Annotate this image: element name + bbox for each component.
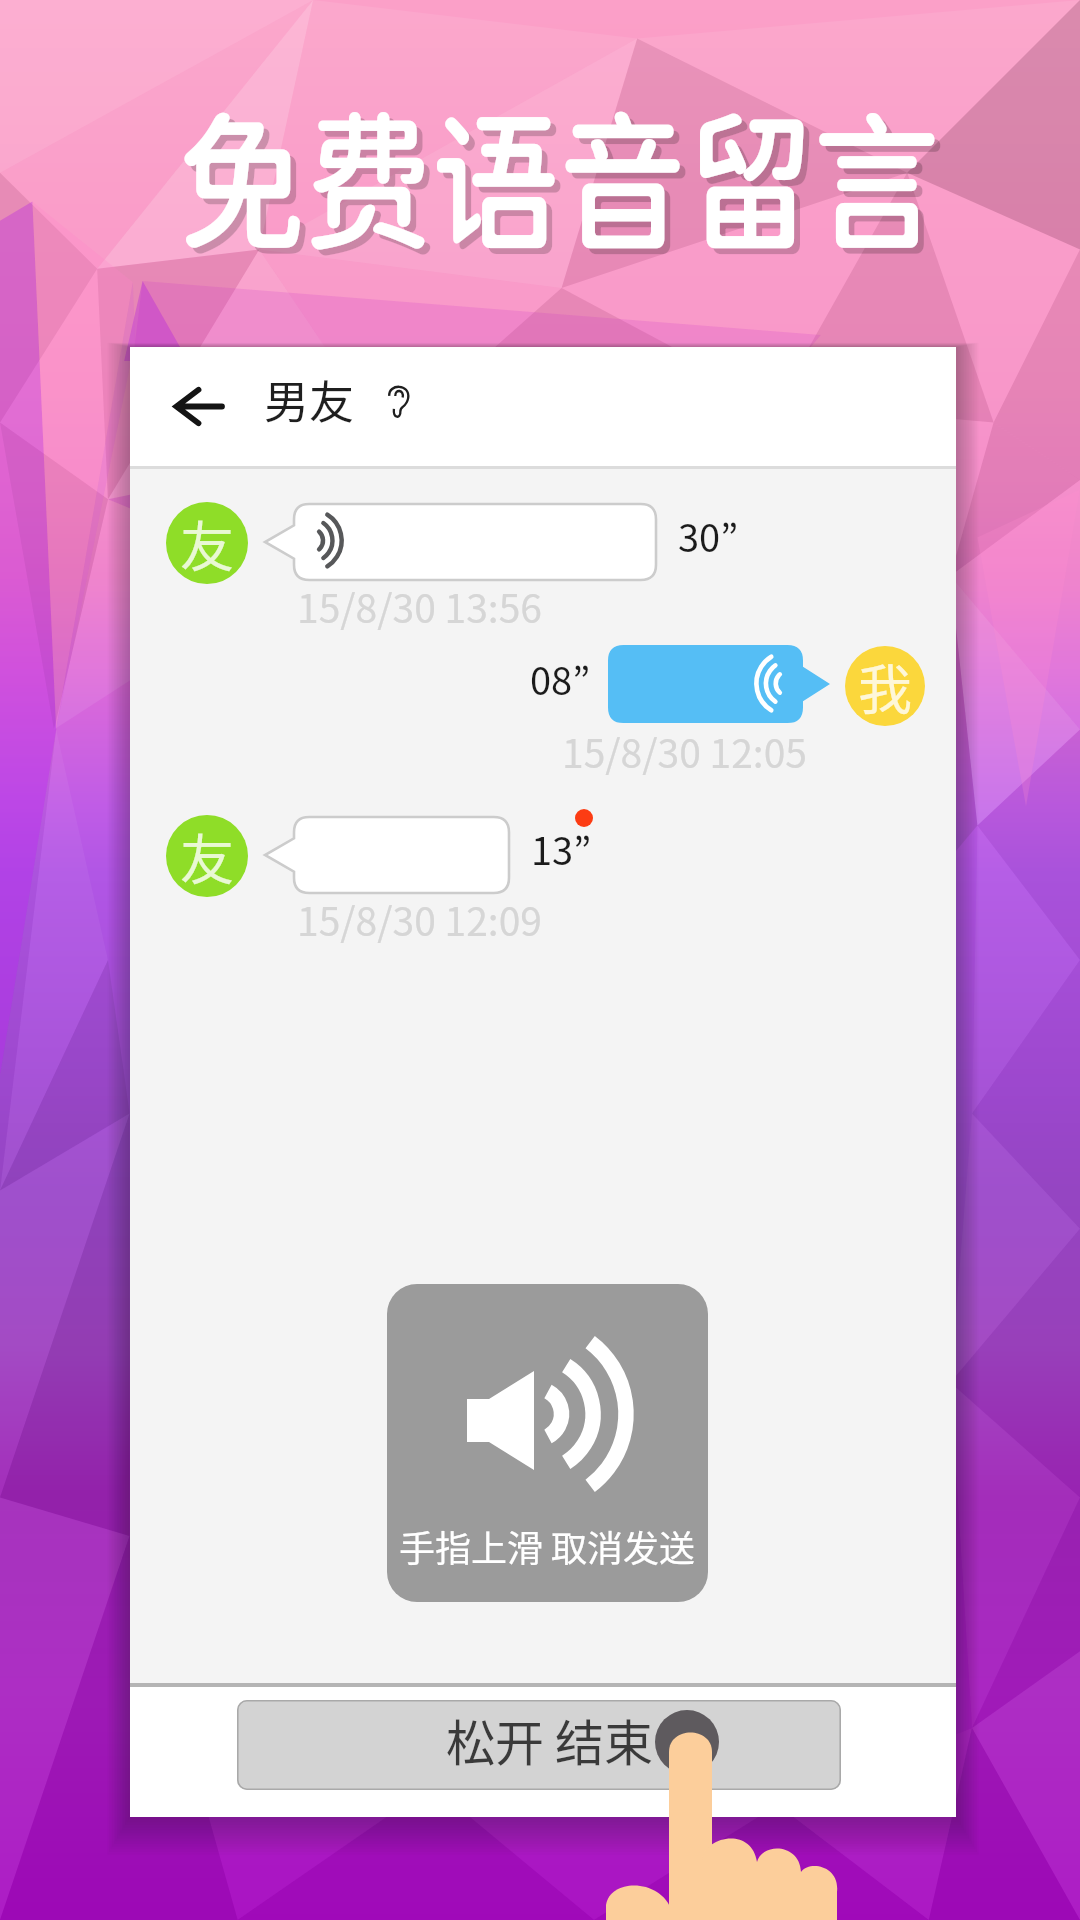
staticText: 15/8/30 12:09 [297,891,542,947]
button[interactable]: 友 [166,502,248,584]
button[interactable]: 友 [166,815,248,897]
staticText: 15/8/30 12:05 [562,723,807,779]
staticText: 松开 结束 [446,1704,653,1775]
staticText: 我 [858,647,912,725]
button[interactable]: 松开 结束 [237,1700,841,1790]
staticText: 08” [530,651,591,706]
staticText: 15/8/30 13:56 [297,578,542,634]
staticText: 友 [180,817,234,895]
button[interactable]: Recording [387,1284,708,1602]
button[interactable] [608,645,830,723]
button[interactable]: 我 [845,646,925,726]
staticText: 30” [678,508,739,563]
staticText: 手指上滑 取消发送 [399,1520,696,1572]
staticText: 13” [531,821,592,876]
button[interactable]: Back [130,347,266,466]
staticText: 友 [180,504,234,582]
staticText: 男友 [264,367,355,432]
button[interactable] [265,817,509,893]
button[interactable] [265,504,656,580]
